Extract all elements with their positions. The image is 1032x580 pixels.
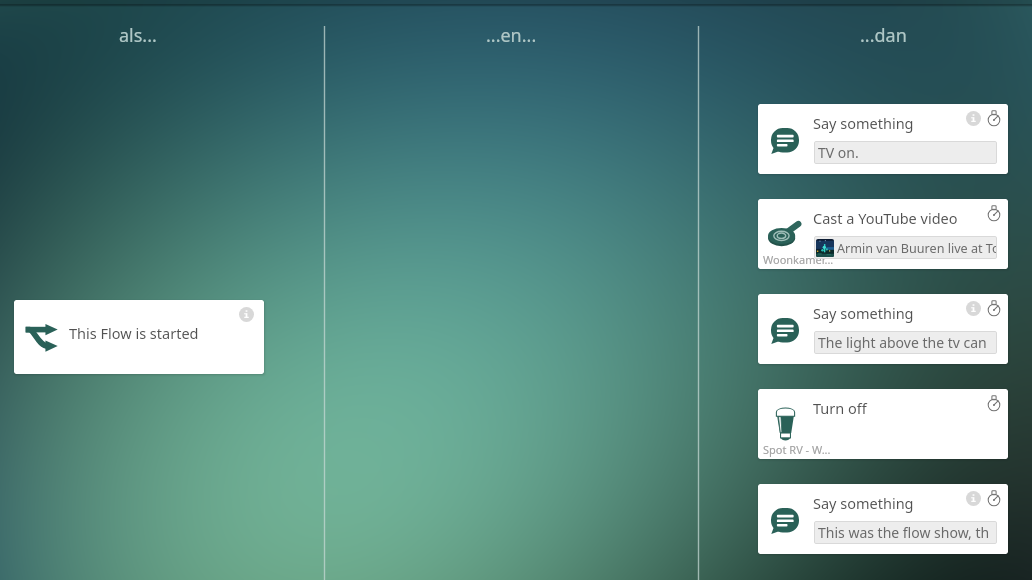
button[interactable]: Set a delay (985, 394, 1003, 412)
staticText: The light above the tv can (818, 333, 987, 352)
button[interactable]: Cast a YouTube video (758, 199, 1008, 269)
staticText: Woonkamer... (763, 252, 834, 267)
button[interactable]: This Flow is started (14, 300, 264, 374)
staticText: Spot RV - W... (763, 442, 831, 457)
staticText: This Flow is started (69, 323, 199, 343)
button[interactable]: Turn off (758, 389, 1008, 459)
button[interactable]: Say something (758, 484, 1008, 554)
button[interactable]: Info (239, 307, 254, 322)
staticText: Turn off (813, 398, 867, 418)
button[interactable]: Info (966, 491, 981, 506)
staticText: Say something (813, 113, 914, 133)
button[interactable]: This was the flow show, th (814, 521, 997, 544)
button[interactable]: Say something (758, 294, 1008, 364)
staticText: TV on. (818, 143, 859, 162)
button[interactable]: Set a delay (985, 204, 1003, 222)
button[interactable]: Armin van Buuren live at To (814, 236, 997, 259)
button[interactable]: Set a delay (985, 299, 1003, 317)
button[interactable]: Say something (758, 104, 1008, 174)
staticText: Say something (813, 303, 914, 323)
staticText: This was the flow show, th (818, 523, 990, 542)
staticText: Armin van Buuren live at To (837, 240, 997, 257)
staticText: Cast a YouTube video (813, 208, 958, 228)
button[interactable]: Set a delay (985, 109, 1003, 127)
button[interactable]: Info (966, 301, 981, 316)
staticText: ...dan (860, 23, 907, 48)
button[interactable]: Info (966, 111, 981, 126)
staticText: als... (119, 23, 157, 48)
button[interactable]: The light above the tv can (814, 331, 997, 354)
staticText: ...en... (486, 23, 537, 48)
staticText: Say something (813, 493, 914, 513)
button[interactable]: Set a delay (985, 489, 1003, 507)
button[interactable]: TV on. (814, 141, 997, 164)
